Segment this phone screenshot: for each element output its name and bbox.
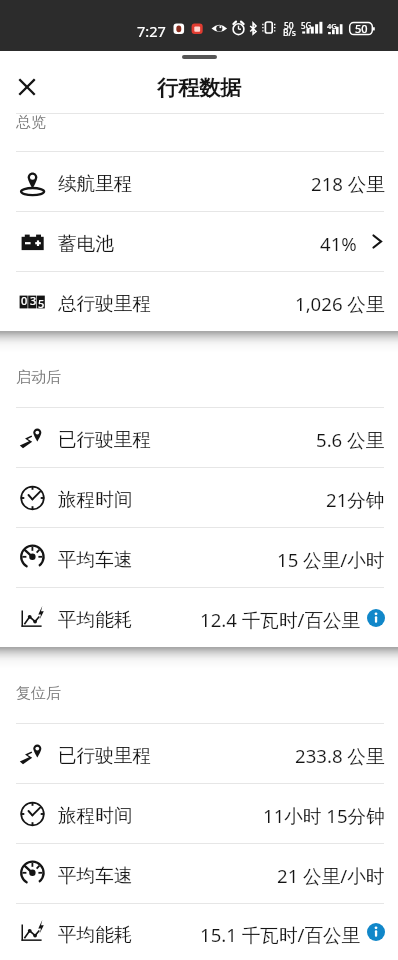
button[interactable]: 0	[0, 272, 398, 331]
staticText: 11小时 15分钟	[263, 803, 385, 828]
staticText: 50	[355, 21, 368, 36]
staticText: 15.1 千瓦时/百公里	[200, 922, 361, 947]
staticText: 50	[284, 20, 294, 32]
staticText: 41%	[320, 231, 357, 256]
staticText: 5	[38, 296, 45, 311]
staticText: 233.8 公里	[295, 743, 385, 768]
button[interactable]: 续航里程	[0, 152, 398, 211]
staticText: 已行驶里程	[58, 428, 151, 451]
staticText: 7:27	[137, 21, 166, 41]
button[interactable]: 已行驶里程	[0, 724, 398, 783]
staticText: 旅程时间	[58, 804, 133, 827]
staticText: 15 公里/小时	[277, 547, 385, 572]
staticText: 4G	[327, 21, 337, 31]
staticText: 复位后	[16, 684, 61, 703]
staticText: 启动后	[16, 368, 61, 387]
button[interactable]: 平均能耗	[0, 588, 398, 647]
staticText: 平均能耗	[58, 608, 133, 631]
staticText: 总览	[16, 113, 46, 132]
button[interactable]: 已行驶里程	[0, 408, 398, 467]
staticText: 3	[30, 293, 37, 308]
staticText: 平均车速	[58, 864, 133, 887]
button[interactable]: 平均车速	[0, 844, 398, 903]
staticText: 21 公里/小时	[277, 863, 385, 888]
button[interactable]: Close	[6, 66, 47, 107]
staticText: 续航里程	[58, 172, 133, 195]
button[interactable]: 平均车速	[0, 528, 398, 587]
staticText: 平均车速	[58, 548, 133, 571]
staticText: 0	[21, 293, 28, 308]
staticText: 5G	[301, 20, 312, 31]
staticText: 行程数据	[157, 75, 241, 101]
staticText: 蓄电池	[58, 232, 114, 255]
staticText: 已行驶里程	[58, 744, 151, 767]
button[interactable]: 旅程时间	[0, 784, 398, 843]
staticText: B/s	[283, 27, 296, 39]
staticText: 218 公里	[311, 171, 385, 196]
staticText: 1,026 公里	[295, 291, 385, 316]
button[interactable]: 蓄电池	[0, 212, 398, 271]
staticText: 21分钟	[326, 487, 385, 512]
button[interactable]: 旅程时间	[0, 468, 398, 527]
staticText: 旅程时间	[58, 488, 133, 511]
staticText: 总行驶里程	[58, 292, 151, 315]
staticText: 12.4 千瓦时/百公里	[200, 607, 361, 632]
button[interactable]: 平均能耗	[0, 904, 398, 960]
staticText: 平均能耗	[58, 923, 133, 946]
staticText: 5.6 公里	[316, 427, 385, 452]
